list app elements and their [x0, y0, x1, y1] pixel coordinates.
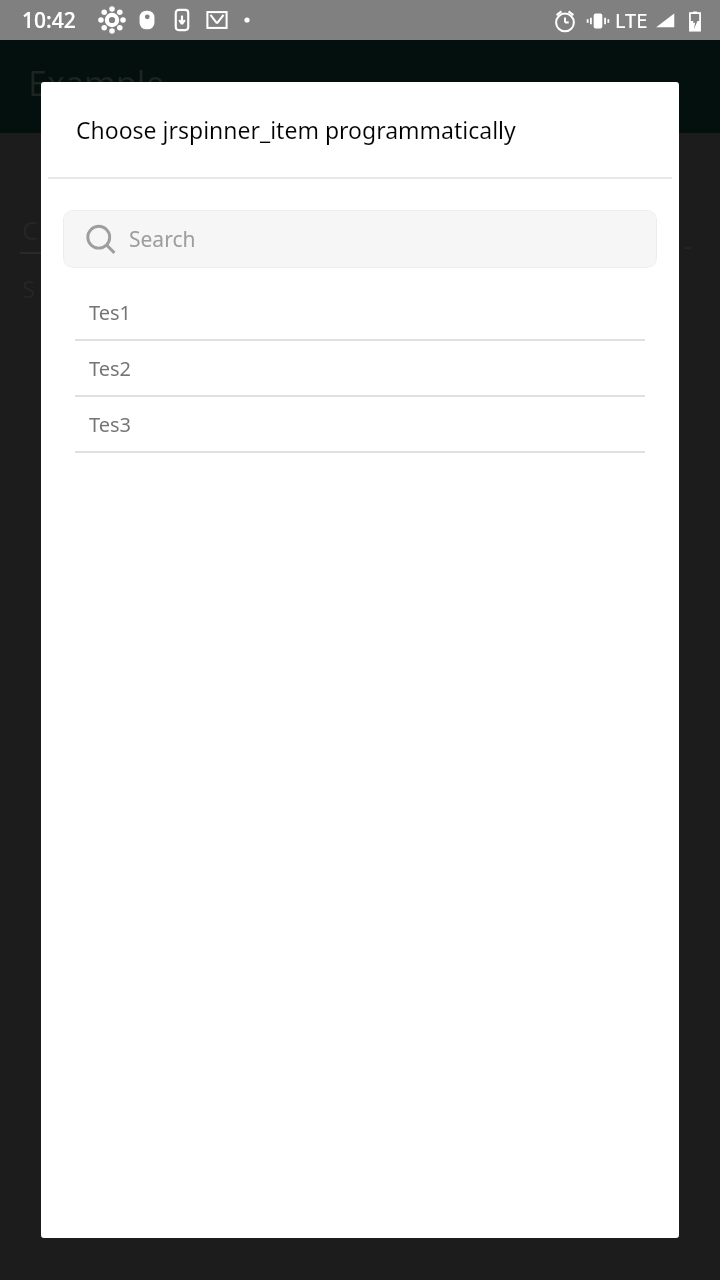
- button[interactable]: Search: [63, 210, 657, 268]
- staticText: Choose jrspinner_item programmatically: [76, 114, 516, 145]
- staticText: Search: [129, 225, 196, 254]
- staticText: 10:42: [22, 6, 76, 35]
- button[interactable]: Tes2: [41, 341, 679, 397]
- other: Search: [87, 226, 115, 254]
- staticText: Example: [28, 60, 165, 106]
- staticText: LTE: [615, 7, 648, 34]
- staticText: Tes1: [89, 299, 132, 326]
- button[interactable]: Tes1: [41, 285, 679, 341]
- staticText: Tes2: [89, 355, 132, 382]
- button[interactable]: Tes3: [41, 397, 679, 453]
- staticText: Tes3: [89, 411, 132, 438]
